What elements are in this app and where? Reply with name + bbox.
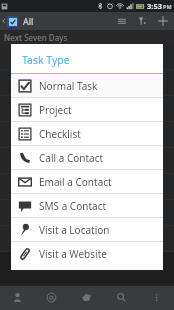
staticText: Project bbox=[39, 103, 72, 117]
button[interactable]: More bbox=[139, 285, 174, 310]
staticText: Call a Contact bbox=[39, 151, 104, 165]
staticText: Normal Task bbox=[39, 79, 98, 93]
staticText: 3:53 bbox=[147, 1, 162, 11]
staticText: Email a Contact bbox=[39, 175, 112, 189]
button[interactable]: Email a Contact bbox=[11, 170, 163, 193]
button[interactable]: Normal Task bbox=[11, 74, 163, 97]
staticText: SMS a Contact bbox=[39, 199, 107, 213]
button[interactable]: Contacts bbox=[0, 285, 34, 310]
staticText: Task Type bbox=[22, 53, 70, 67]
button[interactable]: Checklist bbox=[11, 122, 163, 145]
button[interactable]: Filter bbox=[132, 12, 152, 30]
staticText: All bbox=[23, 15, 34, 27]
staticText: PM bbox=[163, 3, 172, 10]
button[interactable]: Up bbox=[0, 12, 7, 30]
staticText: Visit a Location bbox=[39, 223, 110, 237]
button[interactable]: Visit a Website bbox=[11, 242, 163, 265]
staticText: Visit a Website bbox=[39, 247, 107, 261]
button[interactable]: SMS a Contact bbox=[11, 194, 163, 217]
button[interactable]: Search bbox=[104, 285, 139, 310]
button[interactable]: Email bbox=[34, 285, 69, 310]
button[interactable]: Tags bbox=[69, 285, 104, 310]
button[interactable]: Call a Contact bbox=[11, 146, 163, 169]
staticText: Checklist bbox=[39, 127, 81, 141]
button[interactable]: Project bbox=[11, 98, 163, 121]
button[interactable]: Visit a Location bbox=[11, 218, 163, 241]
button[interactable]: Sort bbox=[112, 12, 132, 30]
staticText: Next Seven Days bbox=[4, 32, 68, 43]
button[interactable]: Add bbox=[152, 12, 174, 30]
